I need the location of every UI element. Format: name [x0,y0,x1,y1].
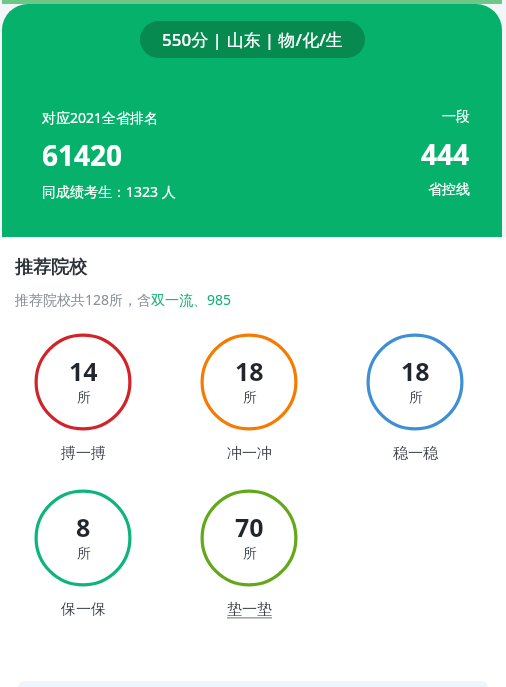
staticText: 444 [421,135,470,173]
staticText: 搏一搏 [61,444,106,463]
staticText: 61420 [42,136,123,174]
staticText: 垫一垫 [227,600,272,619]
staticText: 推荐院校 [15,256,87,279]
button[interactable]: 14 [0,332,166,463]
button[interactable]: 550分 | 山东 | 物/化/生 [140,21,365,58]
button[interactable]: 18 [166,332,332,463]
staticText: 所 [77,389,91,407]
staticText: 18 [235,354,264,388]
staticText: 所 [243,389,257,407]
staticText: 推荐院校共128所，含双一流、985 [15,290,232,309]
button[interactable]: 70 [166,488,332,619]
staticText: 550分 | 山东 | 物/化/生 [162,28,343,51]
staticText: 保一保 [61,600,106,619]
staticText: 70 [235,510,264,544]
staticText: 18 [401,354,430,388]
staticText: 同成绩考生：1323 人 [42,182,176,201]
staticText: 14 [69,354,98,388]
button[interactable]: 8 [0,488,166,619]
staticText: 稳一稳 [393,444,438,463]
button[interactable]: 18 [332,332,498,463]
staticText: 所 [77,545,91,563]
staticText: 所 [409,389,423,407]
staticText: 所 [243,545,257,563]
staticText: 对应2021全省排名 [42,108,159,127]
staticText: 冲一冲 [227,444,272,463]
staticText: 一段 [442,108,470,126]
staticText: 省控线 [428,181,470,199]
staticText: 8 [76,510,91,544]
